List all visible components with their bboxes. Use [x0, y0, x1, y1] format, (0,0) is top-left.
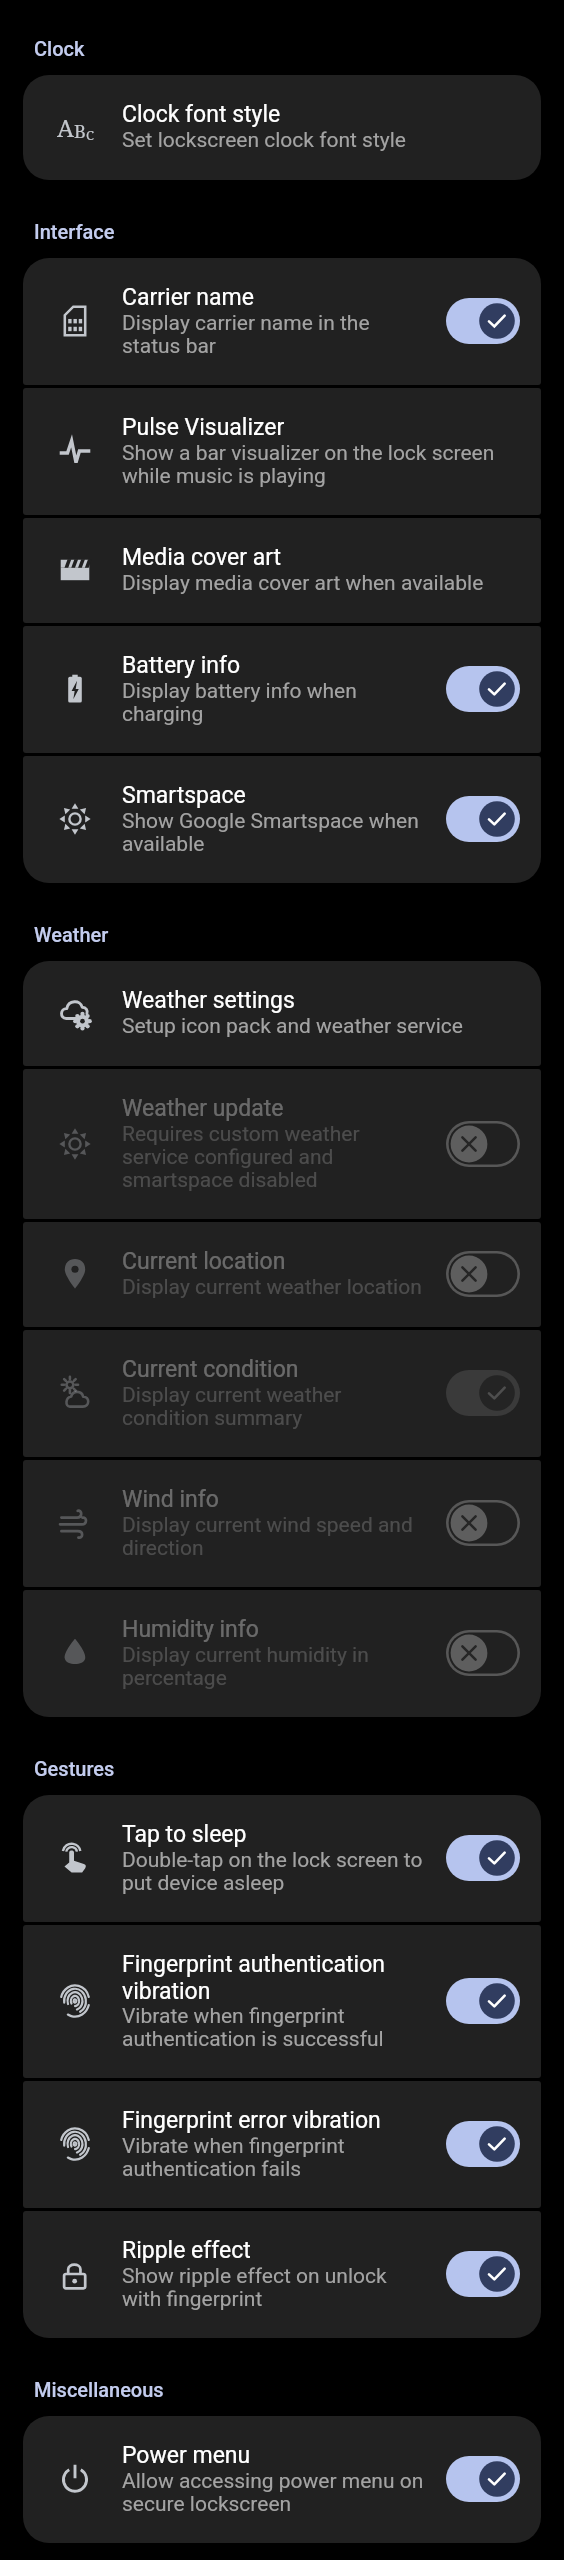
button[interactable]: Switch on [446, 1835, 520, 1881]
staticText: Requires custom weather service configur… [122, 1122, 427, 1192]
button[interactable]: Switch off [446, 1121, 520, 1167]
staticText: B [74, 119, 86, 144]
staticText: Wind info [122, 1486, 219, 1513]
staticText: Weather [34, 923, 109, 946]
staticText: Double-tap on the lock screen to put dev… [122, 1848, 427, 1895]
staticText: Pulse Visualizer [122, 414, 285, 441]
staticText: Allow accessing power menu on secure loc… [122, 2469, 427, 2516]
staticText: Display carrier name in the status bar [122, 311, 427, 358]
staticText: Clock [34, 37, 85, 60]
button[interactable]: Switch on [446, 2251, 520, 2297]
button[interactable]: Switch on [446, 666, 520, 712]
button[interactable]: Switch off [446, 1251, 520, 1297]
staticText: Smartspace [122, 782, 246, 809]
button[interactable]: Carrier name [23, 258, 541, 385]
staticText: Weather update [122, 1095, 284, 1122]
staticText: Media cover art [122, 544, 282, 571]
staticText: Vibrate when fingerprint authentication … [122, 2134, 427, 2181]
button[interactable]: Fingerprint authentication vibration [23, 1925, 541, 2078]
staticText: Display current humidity in percentage [122, 1643, 427, 1690]
staticText: Carrier name [122, 284, 254, 311]
staticText: Fingerprint error vibration [122, 2107, 381, 2134]
staticText: Interface [34, 220, 115, 243]
staticText: Weather settings [122, 987, 295, 1014]
button[interactable]: Fingerprint error vibration [23, 2081, 541, 2208]
button[interactable]: Media cover art [23, 518, 541, 623]
staticText: Humidity info [122, 1616, 259, 1643]
button[interactable]: Current condition [23, 1330, 541, 1457]
staticText: Gestures [34, 1757, 115, 1780]
staticText: Display media cover art when available [122, 571, 484, 596]
staticText: Fingerprint authentication vibration [122, 1951, 427, 2004]
staticText: Display battery info when charging [122, 679, 427, 726]
staticText: Battery info [122, 652, 241, 679]
button[interactable]: Wind info [23, 1460, 541, 1587]
button[interactable]: Battery info [23, 626, 541, 753]
staticText: Vibrate when fingerprint authentication … [122, 2004, 427, 2051]
staticText: Display current weather location [122, 1275, 422, 1300]
staticText: Miscellaneous [34, 2378, 164, 2401]
staticText: Set lockscreen clock font style [122, 128, 406, 153]
staticText: Tap to sleep [122, 1821, 247, 1848]
button[interactable]: Switch on [446, 2456, 520, 2502]
staticText: Show ripple effect on unlock with finger… [122, 2264, 427, 2311]
staticText: Current condition [122, 1356, 299, 1383]
staticText: Ripple effect [122, 2237, 251, 2264]
button[interactable]: Switch on [446, 2121, 520, 2167]
button[interactable]: Switch off [446, 1630, 520, 1676]
staticText: Setup icon pack and weather service [122, 1014, 463, 1039]
button[interactable]: Switch on [446, 1978, 520, 2024]
button[interactable]: Current location [23, 1222, 541, 1327]
staticText: Current location [122, 1248, 286, 1275]
button[interactable]: Switch off [446, 1500, 520, 1546]
button[interactable]: Ripple effect [23, 2211, 541, 2338]
button[interactable]: Weather update [23, 1069, 541, 1219]
button[interactable]: Smartspace [23, 756, 541, 883]
staticText: Show a bar visualizer on the lock screen… [122, 441, 520, 488]
button[interactable]: Switch on [446, 1370, 520, 1416]
staticText: Power menu [122, 2442, 251, 2469]
staticText: A [57, 111, 74, 144]
staticText: Display current weather condition summar… [122, 1383, 427, 1430]
button[interactable]: Power menu [23, 2416, 541, 2543]
staticText: Show Google Smartspace when available [122, 809, 427, 856]
button[interactable]: Switch on [446, 796, 520, 842]
button[interactable]: Switch on [446, 298, 520, 344]
button[interactable]: Humidity info [23, 1590, 541, 1717]
staticText: Clock font style [122, 101, 281, 128]
button[interactable]: A [23, 75, 541, 180]
button[interactable]: Tap to sleep [23, 1795, 541, 1922]
staticText: C [86, 126, 94, 144]
staticText: Display current wind speed and direction [122, 1513, 427, 1560]
button[interactable]: Pulse Visualizer [23, 388, 541, 515]
button[interactable]: Weather settings [23, 961, 541, 1066]
